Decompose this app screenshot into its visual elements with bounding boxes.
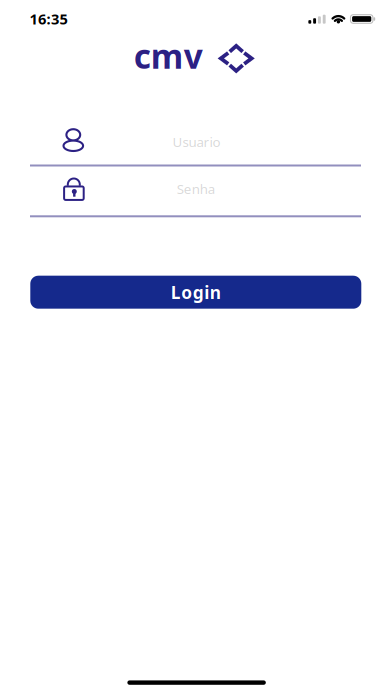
staticText: Usuario xyxy=(172,133,220,151)
button[interactable]: Login xyxy=(30,276,361,309)
staticText: Login xyxy=(171,281,221,304)
staticText: 16:35 xyxy=(29,9,67,29)
button[interactable]: Usuario xyxy=(30,121,361,166)
button[interactable]: Senha xyxy=(30,172,361,217)
staticText: Senha xyxy=(177,180,215,198)
staticText: cmv xyxy=(134,34,203,78)
